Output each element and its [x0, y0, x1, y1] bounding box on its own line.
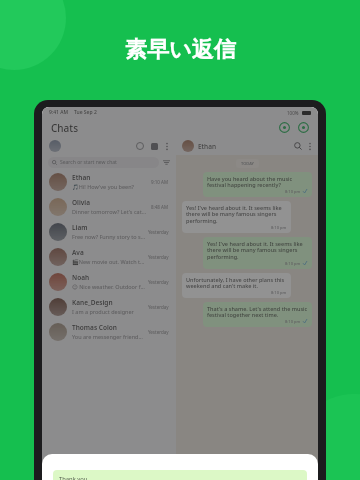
button[interactable]: Status: [136, 142, 144, 150]
staticText: Olivia: [72, 198, 90, 207]
staticText: 9:41 AM: [49, 109, 69, 116]
button[interactable]: Noah: [42, 269, 176, 294]
staticText: TODAY: [241, 161, 254, 166]
staticText: Chats: [51, 121, 79, 135]
staticText: 8:10 pm: [271, 225, 287, 230]
button[interactable]: Ethan: [42, 169, 176, 194]
staticText: Search or start new chat: [60, 159, 117, 166]
button[interactable]: More options: [165, 142, 169, 151]
button[interactable]: Olivia: [42, 194, 176, 219]
staticText: Thank you: [59, 475, 88, 480]
staticText: 😊 Nice weather. Outdoor fun?: [72, 283, 145, 290]
button[interactable]: More options: [308, 142, 312, 151]
button[interactable]: Yes! I've heard about it. It seems like …: [203, 237, 312, 269]
staticText: Ethan: [198, 142, 216, 151]
button[interactable]: Filter: [163, 159, 170, 166]
staticText: I am a product designer: [72, 308, 134, 315]
staticText: Yes! I've heard about it. It seems like …: [186, 204, 287, 225]
button[interactable]: Kane_Design: [42, 294, 176, 319]
staticText: 8:10 pm: [285, 261, 301, 266]
staticText: 8:10 pm: [271, 290, 287, 295]
staticText: Tue Sep 2: [74, 109, 97, 116]
staticText: Dinner tomorrow? Let's catch up.: [72, 208, 148, 215]
button[interactable]: Search or start new chat: [48, 157, 159, 168]
staticText: 8:10 pm: [285, 189, 301, 194]
staticText: Kane_Design: [72, 298, 113, 307]
staticText: Yes! I've heard about it. It seems like …: [207, 240, 308, 261]
button[interactable]: Thank you: [53, 470, 307, 480]
staticText: 9:10 AM: [151, 179, 169, 185]
button[interactable]: Search: [294, 142, 302, 150]
staticText: Thomas Colon: [72, 323, 117, 332]
staticText: 100%: [287, 110, 299, 116]
staticText: Liam: [72, 223, 88, 232]
button[interactable]: Thomas Colon: [42, 319, 176, 344]
button[interactable]: New chat: [151, 143, 158, 150]
staticText: Unfortunately, I have other plans this w…: [186, 276, 287, 290]
button[interactable]: Unfortunately, I have other plans this w…: [182, 273, 291, 298]
staticText: Ethan: [72, 173, 91, 182]
staticText: 8:10 pm: [285, 319, 301, 324]
staticText: 🎵Hi! How've you been?: [72, 183, 134, 190]
staticText: Ava: [72, 248, 84, 257]
staticText: Yesterday: [148, 279, 169, 285]
staticText: Noah: [72, 273, 90, 282]
button[interactable]: Liam: [42, 219, 176, 244]
button[interactable]: Status updates: [279, 122, 290, 133]
staticText: 8:48 AM: [151, 204, 169, 210]
staticText: You are messenger friends now!: [72, 333, 145, 340]
button[interactable]: Have you heard about the music festival …: [203, 172, 312, 197]
staticText: Yesterday: [148, 254, 169, 260]
staticText: Yesterday: [148, 229, 169, 235]
staticText: 素早い返信: [125, 36, 236, 64]
button[interactable]: That's a shame. Let's attend the music f…: [203, 302, 312, 327]
staticText: 🎬New movie out. Watch together?: [72, 258, 145, 265]
staticText: Yesterday: [148, 329, 169, 335]
button[interactable]: Yes! I've heard about it. It seems like …: [182, 201, 291, 233]
staticText: That's a shame. Let's attend the music f…: [207, 305, 308, 319]
button[interactable]: Ava: [42, 244, 176, 269]
staticText: Have you heard about the music festival …: [207, 175, 308, 189]
staticText: Yesterday: [148, 304, 169, 310]
staticText: Free now? Funny story to share!: [72, 233, 145, 240]
button[interactable]: Calls: [298, 122, 309, 133]
